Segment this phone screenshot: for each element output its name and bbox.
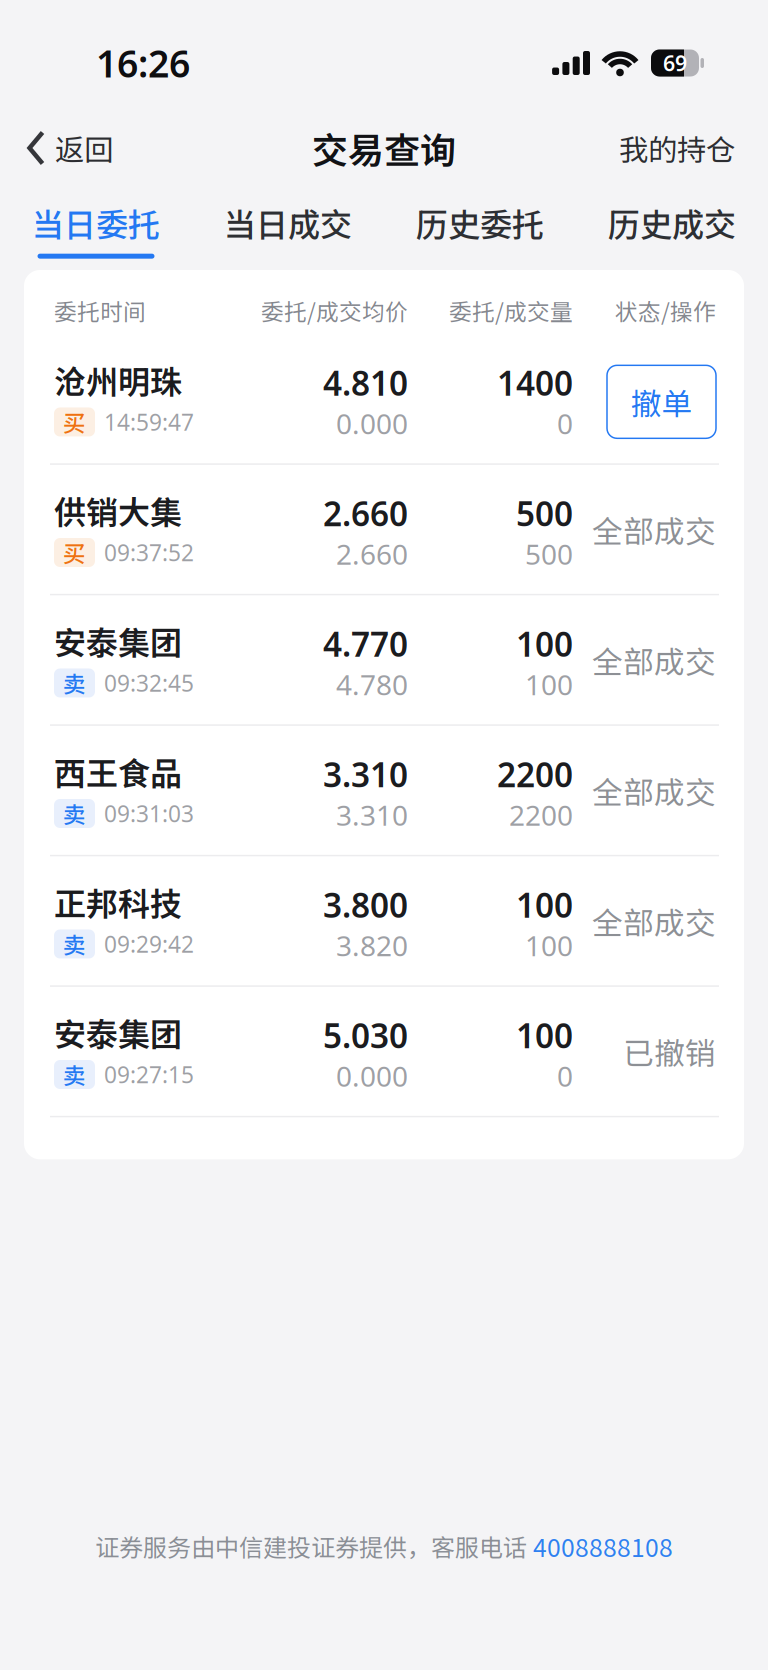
staticText: 沧州明珠 bbox=[54, 357, 182, 403]
staticText: 09:32:45 bbox=[104, 668, 194, 698]
staticText: 69 bbox=[663, 49, 687, 77]
staticText: 卖 bbox=[63, 928, 86, 960]
staticText: 2.660 bbox=[323, 491, 408, 535]
staticText: 供销大集 bbox=[54, 487, 182, 533]
staticText: 2.660 bbox=[336, 535, 408, 573]
staticText: 当日成交 bbox=[224, 199, 352, 246]
staticText: 3.310 bbox=[323, 752, 408, 796]
staticText: 3.820 bbox=[336, 927, 408, 964]
staticText: 100 bbox=[516, 1013, 573, 1057]
staticText: 14:59:47 bbox=[104, 407, 194, 437]
staticText: 100 bbox=[516, 883, 573, 927]
staticText: 2200 bbox=[509, 796, 573, 834]
staticText: 09:37:52 bbox=[104, 537, 194, 567]
staticText: 全部成交 bbox=[592, 899, 716, 943]
staticText: 2200 bbox=[497, 752, 573, 796]
button[interactable]: 返回 bbox=[0, 127, 113, 169]
staticText: 4.810 bbox=[323, 361, 408, 405]
staticText: 状态/操作 bbox=[615, 294, 716, 327]
staticText: 历史成交 bbox=[608, 199, 736, 246]
staticText: 0.000 bbox=[336, 405, 408, 442]
staticText: 3.310 bbox=[336, 796, 408, 834]
staticText: 100 bbox=[525, 666, 573, 703]
staticText: 委托/成交量 bbox=[449, 294, 573, 327]
staticText: 安泰集团 bbox=[54, 1009, 182, 1055]
staticText: 4.780 bbox=[336, 666, 408, 703]
staticText: 全部成交 bbox=[592, 638, 716, 682]
staticText: 交易查询 bbox=[312, 122, 456, 174]
staticText: 历史委托 bbox=[416, 199, 544, 246]
staticText: 撤单 bbox=[630, 380, 692, 424]
staticText: 当日委托 bbox=[32, 199, 160, 246]
staticText: 100 bbox=[525, 927, 573, 964]
staticText: 委托时间 bbox=[54, 294, 146, 327]
staticText: 0.000 bbox=[336, 1057, 408, 1095]
staticText: 全部成交 bbox=[592, 768, 716, 812]
staticText: 100 bbox=[516, 622, 573, 666]
staticText: 买 bbox=[63, 536, 86, 569]
button[interactable]: 当日成交 bbox=[192, 199, 384, 259]
staticText: 西王食品 bbox=[54, 748, 182, 794]
button[interactable]: 历史委托 bbox=[384, 199, 576, 259]
staticText: 0 bbox=[557, 405, 573, 442]
staticText: 09:31:03 bbox=[104, 798, 194, 828]
staticText: 16:26 bbox=[96, 38, 190, 88]
staticText: 09:27:15 bbox=[104, 1059, 194, 1089]
button[interactable]: 4008888108 bbox=[533, 1528, 673, 1564]
button[interactable]: 历史成交 bbox=[576, 199, 768, 259]
staticText: 3.800 bbox=[323, 883, 408, 927]
staticText: 卖 bbox=[63, 1058, 86, 1091]
staticText: 5.030 bbox=[323, 1013, 408, 1057]
staticText: 返回 bbox=[55, 127, 113, 169]
button[interactable]: 撤单 bbox=[607, 365, 716, 438]
staticText: 安泰集团 bbox=[54, 618, 182, 664]
staticText: 500 bbox=[516, 491, 573, 535]
staticText: 卖 bbox=[63, 667, 86, 699]
staticText: 1400 bbox=[497, 361, 573, 405]
staticText: 4008888108 bbox=[533, 1528, 673, 1564]
staticText: 正邦科技 bbox=[54, 879, 182, 925]
staticText: 09:29:42 bbox=[104, 929, 194, 959]
staticText: 卖 bbox=[63, 797, 86, 830]
staticText: 证券服务由中信建投证券提供，客服电话 bbox=[95, 1529, 527, 1564]
staticText: 全部成交 bbox=[592, 507, 716, 551]
staticText: 已撤销 bbox=[623, 1029, 716, 1073]
staticText: 0 bbox=[557, 1057, 573, 1095]
staticText: 500 bbox=[525, 535, 573, 573]
button[interactable]: 我的持仓 bbox=[619, 127, 768, 169]
staticText: 我的持仓 bbox=[619, 127, 735, 169]
staticText: 买 bbox=[63, 406, 86, 438]
staticText: 4.770 bbox=[323, 622, 408, 666]
staticText: 委托/成交均价 bbox=[261, 294, 408, 327]
button[interactable]: 当日委托 bbox=[0, 199, 192, 259]
